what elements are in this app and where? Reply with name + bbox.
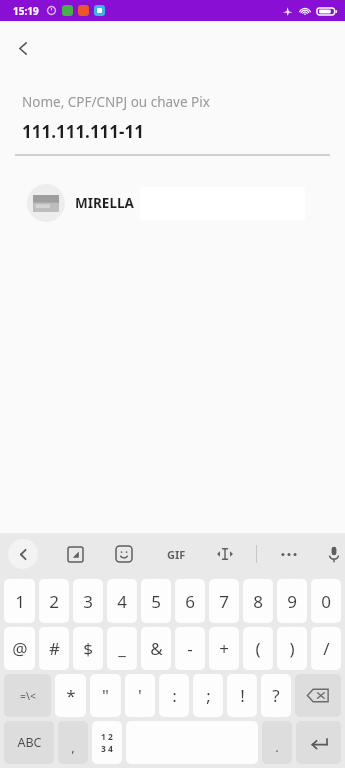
staticText: 111.111.111-11	[22, 120, 144, 143]
staticText: :	[172, 684, 177, 707]
button[interactable]: 1 2	[92, 721, 122, 764]
button[interactable]: *	[55, 674, 86, 717]
button[interactable]: 7	[209, 579, 239, 623]
staticText: 8	[253, 590, 263, 613]
staticText: 15:19	[13, 4, 39, 18]
staticText: 7	[219, 590, 229, 613]
button[interactable]: Back	[8, 539, 38, 569]
button[interactable]: Clipboard	[60, 539, 90, 569]
button[interactable]: 6	[175, 579, 205, 623]
button[interactable]: More options	[274, 539, 304, 569]
staticText: "	[102, 684, 109, 707]
staticText: 0	[321, 590, 331, 613]
button[interactable]: Voice input	[323, 539, 345, 569]
button[interactable]: 9	[277, 579, 307, 623]
button[interactable]: ABC	[4, 721, 54, 764]
button[interactable]: &	[141, 627, 171, 670]
staticText: MIRELLA	[75, 194, 134, 212]
staticText: '	[138, 684, 142, 707]
button[interactable]: Emoji	[109, 539, 139, 569]
button[interactable]: Enter	[296, 721, 341, 764]
staticText: Nome, CPF/CNPJ ou chave Pix	[22, 93, 210, 111]
button[interactable]: 3	[73, 579, 103, 623]
staticText: 4	[117, 590, 127, 613]
staticText: &	[150, 637, 163, 660]
staticText: /	[323, 637, 330, 660]
staticText: 2	[49, 590, 59, 613]
staticText: #	[49, 637, 60, 660]
button[interactable]: /	[311, 627, 341, 670]
staticText: *	[66, 684, 76, 707]
staticText: GIF	[167, 547, 186, 562]
button[interactable]: 5	[141, 579, 171, 623]
button[interactable]: '	[125, 674, 155, 717]
button[interactable]: 1	[4, 579, 35, 623]
staticText: )	[289, 637, 295, 660]
button[interactable]: Backspace	[295, 674, 341, 717]
button[interactable]: 8	[243, 579, 273, 623]
button[interactable]: #	[39, 627, 69, 670]
button[interactable]: ,	[58, 721, 88, 764]
button[interactable]: 0	[311, 579, 341, 623]
staticText: ,	[71, 738, 75, 756]
staticText: _	[118, 637, 126, 660]
staticText: 3	[83, 590, 93, 613]
button[interactable]: _	[107, 627, 137, 670]
button[interactable]: @	[4, 627, 35, 670]
staticText: ;	[206, 684, 211, 707]
staticText: +	[219, 637, 229, 660]
button[interactable]: 4	[107, 579, 137, 623]
staticText: 1	[15, 590, 25, 613]
staticText: 1 2	[101, 731, 113, 743]
staticText: 6	[185, 590, 195, 613]
button[interactable]: ;	[193, 674, 223, 717]
staticText: =\<	[20, 689, 36, 703]
button[interactable]: -	[175, 627, 205, 670]
staticText: 3 4	[101, 743, 113, 755]
button[interactable]: =\<	[4, 674, 51, 717]
button[interactable]: GIF	[159, 539, 193, 569]
staticText: .	[275, 738, 279, 756]
button[interactable]: MIRELLA	[0, 180, 345, 226]
button[interactable]: .	[262, 721, 292, 764]
staticText: $	[83, 637, 93, 660]
button[interactable]: :	[159, 674, 189, 717]
button[interactable]: +	[209, 627, 239, 670]
button[interactable]: !	[227, 674, 257, 717]
button[interactable]: ?	[261, 674, 291, 717]
staticText: (	[255, 637, 261, 660]
staticText: ABC	[17, 734, 42, 751]
button[interactable]: $	[73, 627, 103, 670]
button[interactable]: Back	[6, 31, 40, 65]
staticText: 9	[287, 590, 297, 613]
button[interactable]: Text editing	[210, 539, 240, 569]
staticText: -	[187, 637, 193, 660]
button[interactable]: 2	[39, 579, 69, 623]
staticText: 5	[151, 590, 161, 613]
button[interactable]: )	[277, 627, 307, 670]
staticText: ?	[272, 684, 280, 707]
staticText: !	[240, 684, 245, 707]
button[interactable]: "	[90, 674, 121, 717]
button[interactable]: (	[243, 627, 273, 670]
staticText: @	[12, 637, 28, 660]
